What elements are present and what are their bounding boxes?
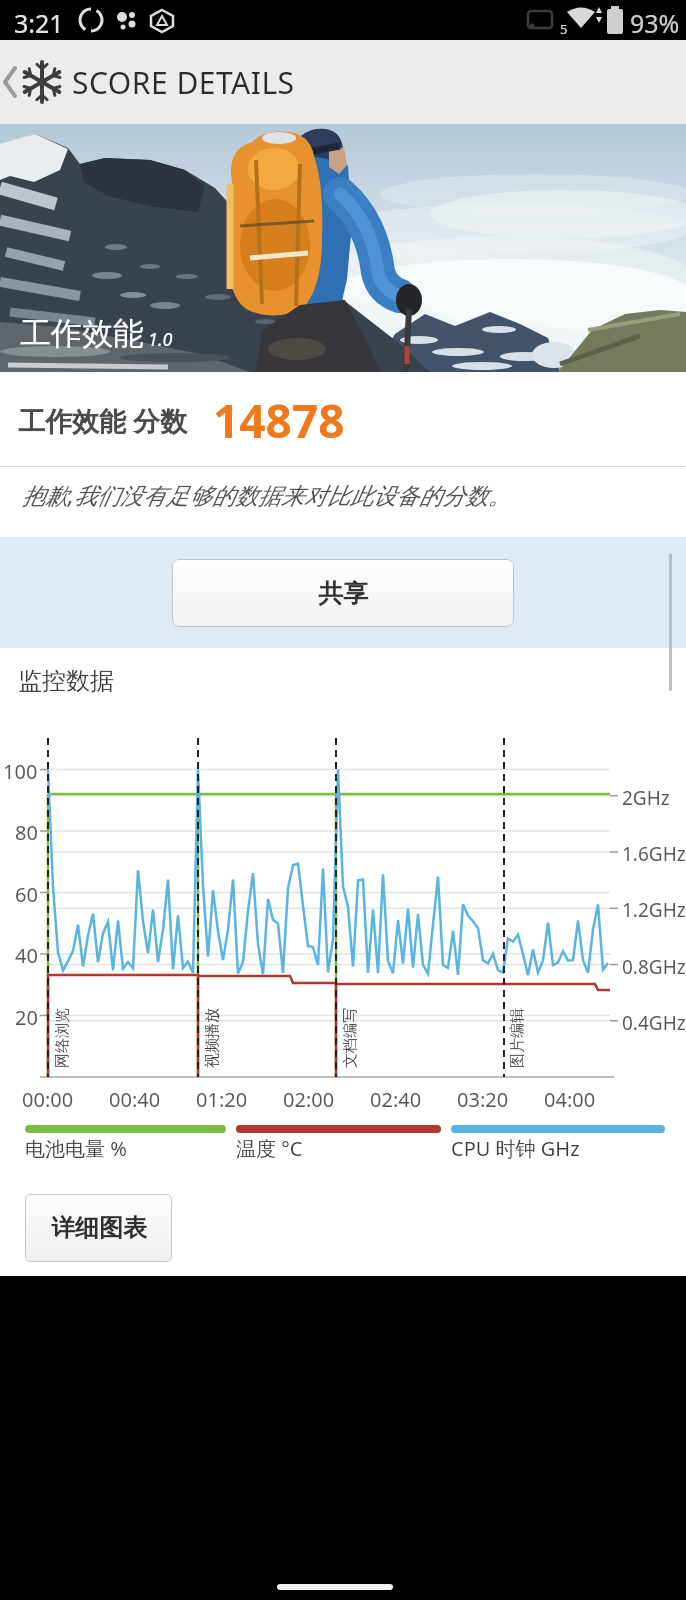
staticText: 图片编辑 bbox=[508, 1008, 527, 1068]
staticText: 00:00 bbox=[22, 1086, 74, 1113]
staticText: 详细图表 bbox=[51, 1213, 147, 1243]
staticText: 0.4GHz bbox=[622, 1010, 686, 1036]
staticText: 100 bbox=[3, 758, 38, 785]
staticText: 温度 °C bbox=[236, 1135, 303, 1162]
staticText: 80 bbox=[15, 819, 38, 846]
staticText: 5 bbox=[560, 20, 568, 38]
staticText: 02:00 bbox=[283, 1086, 335, 1113]
staticText: 1.2GHz bbox=[622, 897, 686, 923]
staticText: 00:40 bbox=[109, 1086, 161, 1113]
button[interactable]: SCORE DETAILS bbox=[0, 40, 686, 124]
staticText: 1.6GHz bbox=[622, 841, 686, 867]
staticText: 文档编写 bbox=[341, 1008, 360, 1068]
button[interactable]: 详细图表 bbox=[25, 1194, 172, 1262]
staticText: 03:20 bbox=[457, 1086, 509, 1113]
staticText: 电池电量 % bbox=[25, 1135, 127, 1162]
staticText: 共享 bbox=[318, 578, 368, 609]
staticText: SCORE DETAILS bbox=[72, 62, 295, 103]
staticText: 工作效能 分数 bbox=[18, 402, 188, 439]
staticText: 93% bbox=[630, 6, 680, 40]
staticText: 视频播放 bbox=[203, 1008, 222, 1068]
button[interactable]: 共享 bbox=[172, 559, 514, 627]
staticText: 网络浏览 bbox=[53, 1008, 72, 1068]
staticText: 监控数据 bbox=[18, 666, 114, 696]
staticText: 14878 bbox=[213, 389, 345, 452]
staticText: CPU 时钟 GHz bbox=[451, 1135, 580, 1162]
staticText: 60 bbox=[15, 881, 38, 908]
staticText: 02:40 bbox=[370, 1086, 422, 1113]
staticText: 01:20 bbox=[196, 1086, 248, 1113]
staticText: 3:21 bbox=[14, 6, 64, 40]
staticText: 1.0 bbox=[148, 327, 173, 352]
staticText: 0.8GHz bbox=[622, 954, 686, 980]
staticText: 20 bbox=[15, 1004, 38, 1031]
staticText: 2GHz bbox=[622, 785, 670, 811]
staticText: 04:00 bbox=[544, 1086, 596, 1113]
staticText: 工作效能 bbox=[20, 314, 144, 353]
staticText: 40 bbox=[15, 942, 38, 969]
staticText: 抱歉,我们没有足够的数据来对比此设备的分数。 bbox=[22, 479, 511, 510]
